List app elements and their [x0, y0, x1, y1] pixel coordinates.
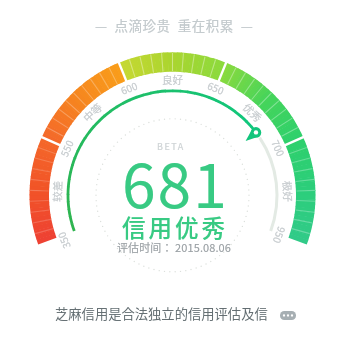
staticText: 评估时间： 2015.08.06 — [117, 239, 232, 255]
staticText: 芝麻信用是合法独立的信用评估及信 — [55, 304, 268, 323]
staticText: — 点滴珍贵 重在积累 — — [95, 15, 254, 35]
staticText: BETA — [157, 140, 185, 153]
staticText: 681 — [122, 138, 229, 226]
button[interactable] — [280, 311, 296, 320]
staticText: 信用优秀 — [122, 210, 228, 244]
